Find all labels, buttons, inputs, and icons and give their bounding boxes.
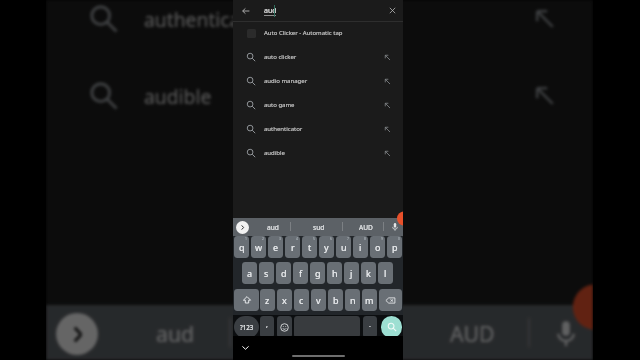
button[interactable]: v [311,289,326,311]
button[interactable]: audible [233,141,403,165]
staticText: audible [144,83,212,109]
button[interactable]: audible [46,57,593,134]
button[interactable]: t [302,236,317,258]
button[interactable]: ?123 [234,316,259,338]
staticText: s [264,267,269,279]
staticText: AUD [359,223,373,232]
staticText: f [299,267,303,279]
button[interactable]: h [327,262,342,284]
button[interactable]: audible [46,57,593,134]
button[interactable]: z [260,289,275,311]
staticText: g [315,267,321,279]
button[interactable]: Clear search [388,6,397,15]
button[interactable]: auto game [233,93,403,117]
staticText: x [282,294,287,306]
button[interactable]: l [378,262,393,284]
button[interactable]: m [362,289,377,311]
staticText: auto game [264,101,295,109]
button[interactable]: r [285,236,300,258]
staticText: 5 [313,236,315,241]
button[interactable]: Expand suggestions [236,221,249,234]
button[interactable]: a [242,262,257,284]
staticText: audible [144,83,212,109]
staticText: auto clicker [264,53,297,61]
button[interactable]: Backspace [379,289,402,311]
button[interactable]: o [370,236,385,258]
staticText: authenticator [144,6,267,32]
staticText: authenticator [144,6,267,32]
button[interactable]: aud [121,305,230,360]
staticText: 4 [296,236,298,241]
staticText: sud [313,223,325,232]
staticText: , [266,320,268,330]
button[interactable]: Emoji [277,316,292,338]
button[interactable]: , [260,316,274,338]
button[interactable]: e [268,236,283,258]
button[interactable]: Expand suggestions [56,313,98,355]
staticText: 0 [398,236,400,241]
button[interactable]: authenticator [233,117,403,141]
button[interactable]: Voice input [538,305,593,360]
button[interactable]: k [361,262,376,284]
button[interactable]: j [344,262,359,284]
staticText: 2 [262,236,264,241]
staticText: t [308,241,312,253]
staticText: aud [156,319,195,348]
staticText: h [332,267,338,279]
staticText: w [255,241,263,253]
staticText: sud [302,319,339,348]
button[interactable]: g [310,262,325,284]
button[interactable]: AUD [418,305,527,360]
button[interactable]: authenticator [46,0,593,57]
staticText: ?123 [240,323,254,331]
staticText: c [299,294,304,306]
button[interactable]: f [293,262,308,284]
button[interactable]: Shift [234,289,259,311]
button[interactable]: Space [294,316,360,338]
button[interactable]: Hide keyboard [240,342,251,353]
staticText: o [375,241,381,253]
button[interactable]: q [234,236,249,258]
staticText: u [341,241,347,253]
staticText: . [369,320,371,330]
staticText: 1 [245,236,247,241]
staticText: authenticator [264,125,303,133]
button[interactable]: c [294,289,309,311]
button[interactable]: aud [256,218,290,236]
button[interactable]: Back [241,6,251,16]
button[interactable]: auto clicker [233,45,403,69]
button[interactable]: sud [302,218,336,236]
staticText: AUD [450,319,495,348]
button[interactable]: Search [381,316,402,338]
button[interactable]: audio manager [233,69,403,93]
button[interactable]: y [319,236,334,258]
button[interactable]: AUD [418,305,527,360]
button[interactable]: aud [121,305,230,360]
staticText: r [291,241,295,253]
button[interactable]: Expand suggestions [56,313,98,355]
button[interactable]: . [363,316,377,338]
button[interactable]: AUD [349,218,383,236]
button[interactable]: s [259,262,274,284]
button[interactable]: sud [266,305,375,360]
button[interactable]: Voice input [386,218,403,236]
button[interactable]: Auto Clicker - Automatic tap [233,22,403,44]
button[interactable]: n [345,289,360,311]
staticText: p [392,241,398,253]
button[interactable]: Voice input [538,305,593,360]
button[interactable]: d [276,262,291,284]
button[interactable]: authenticator [46,0,593,57]
staticText: d [281,267,287,279]
staticText: 3 [279,236,281,241]
button[interactable]: b [328,289,343,311]
button[interactable]: sud [266,305,375,360]
staticText: a [247,267,253,279]
button[interactable]: w [251,236,266,258]
button[interactable]: i [353,236,368,258]
button[interactable]: x [277,289,292,311]
staticText: Auto Clicker - Automatic tap [264,29,343,37]
staticText: k [366,267,371,279]
button[interactable]: p [387,236,402,258]
button[interactable]: u [336,236,351,258]
staticText: e [273,241,279,253]
